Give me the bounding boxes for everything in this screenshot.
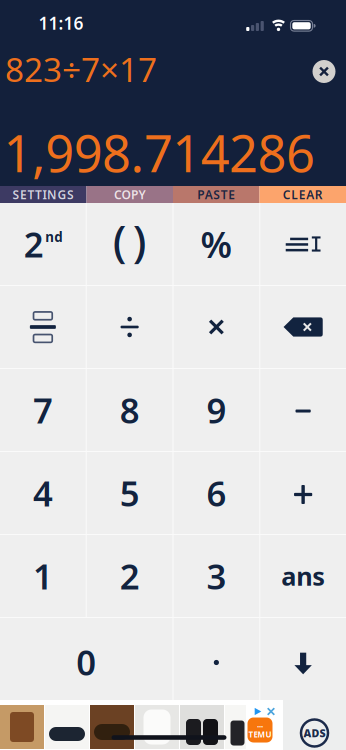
staticText: ADS <box>303 726 325 740</box>
button[interactable]: ( <box>87 203 173 285</box>
button[interactable]: 9 <box>173 369 259 451</box>
staticText: 2 <box>120 553 140 599</box>
staticText: 6 <box>206 470 226 516</box>
staticText: PASTE <box>197 186 235 202</box>
staticText: ans <box>281 559 325 593</box>
staticText: 1,998.714286 <box>3 119 315 186</box>
staticText: COPY <box>114 186 145 202</box>
button[interactable] <box>260 618 346 700</box>
button[interactable]: SETTINGS <box>0 186 86 203</box>
staticText: ... <box>257 719 263 730</box>
staticText: 0 <box>76 639 96 685</box>
button[interactable]: 5 <box>87 452 173 534</box>
button[interactable] <box>260 452 346 534</box>
staticText: 9 <box>206 387 226 433</box>
staticText: 2 <box>24 221 44 267</box>
button[interactable] <box>260 203 346 285</box>
button[interactable]: 8 <box>87 369 173 451</box>
button[interactable]: 0 <box>0 618 172 700</box>
staticText: 8 <box>120 387 140 433</box>
button[interactable]: ADS <box>283 700 346 750</box>
button[interactable]: TEMU <box>0 700 283 750</box>
button[interactable]: 4 <box>0 452 86 534</box>
button[interactable] <box>260 286 346 368</box>
button[interactable] <box>173 618 259 700</box>
staticText: 7 <box>33 387 53 433</box>
button[interactable]: 2 <box>87 535 173 617</box>
button[interactable]: 1 <box>0 535 86 617</box>
staticText: ( <box>113 211 127 269</box>
staticText: % <box>200 220 232 268</box>
button[interactable]: 3 <box>173 535 259 617</box>
staticText: 4 <box>33 470 53 516</box>
staticText: SETTINGS <box>12 186 74 202</box>
button[interactable] <box>0 286 86 368</box>
staticText: nd <box>45 228 62 246</box>
button[interactable]: COPY <box>86 186 173 203</box>
staticText: 11:16 <box>38 11 83 34</box>
button[interactable]: PASTE <box>173 186 259 203</box>
button[interactable]: 7 <box>0 369 86 451</box>
button[interactable] <box>173 286 259 368</box>
staticText: CLEAR <box>283 186 323 202</box>
button[interactable]: 2 <box>0 203 86 285</box>
button[interactable]: % <box>173 203 259 285</box>
staticText: TEMU <box>248 729 271 740</box>
button[interactable]: 6 <box>173 452 259 534</box>
button[interactable] <box>312 60 335 83</box>
staticText: ) <box>133 211 147 269</box>
button[interactable] <box>87 286 173 368</box>
staticText: 1 <box>33 553 53 599</box>
button[interactable]: ans <box>260 535 346 617</box>
button[interactable] <box>260 369 346 451</box>
staticText: 823÷7×17 <box>5 47 157 91</box>
staticText: 3 <box>206 553 226 599</box>
button[interactable]: CLEAR <box>259 186 346 203</box>
staticText: 5 <box>120 470 140 516</box>
